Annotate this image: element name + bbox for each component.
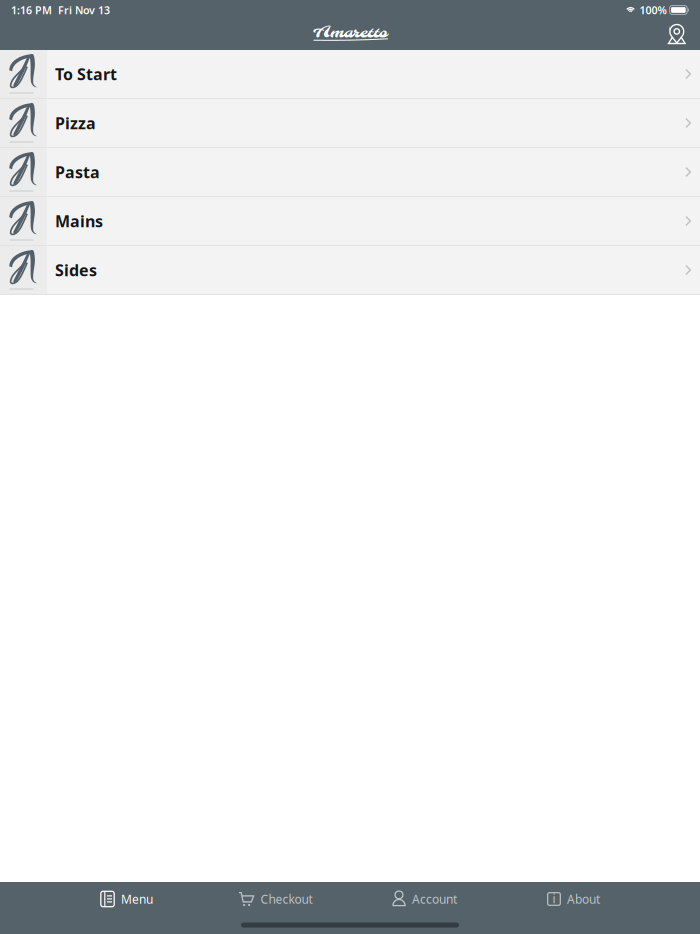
staticText: Checkout [261,891,313,907]
button[interactable]: Pizza [0,99,700,147]
staticText: 1:16 PM [11,3,52,17]
staticText: To Start [55,63,117,85]
button[interactable]: Checkout [201,882,350,916]
button[interactable]: To Start [0,50,700,98]
button[interactable]: Account [350,882,499,916]
button[interactable]: i [499,882,648,916]
staticText: Menu [121,891,153,907]
button[interactable]: Location [659,19,695,49]
staticText: Pasta [55,161,100,183]
staticText: Fri Nov 13 [52,3,110,17]
staticText: Amaretto [313,23,387,43]
staticText: i [552,890,555,906]
staticText: Sides [55,259,97,281]
staticText: 100% [636,3,669,17]
button[interactable]: Mains [0,197,700,245]
staticText: Account [412,891,457,907]
staticText: About [567,891,600,907]
staticText: Pizza [55,112,96,134]
button[interactable]: Sides [0,246,700,294]
button[interactable]: Pasta [0,148,700,196]
staticText: Mains [55,210,103,232]
button[interactable]: Menu [52,882,201,916]
